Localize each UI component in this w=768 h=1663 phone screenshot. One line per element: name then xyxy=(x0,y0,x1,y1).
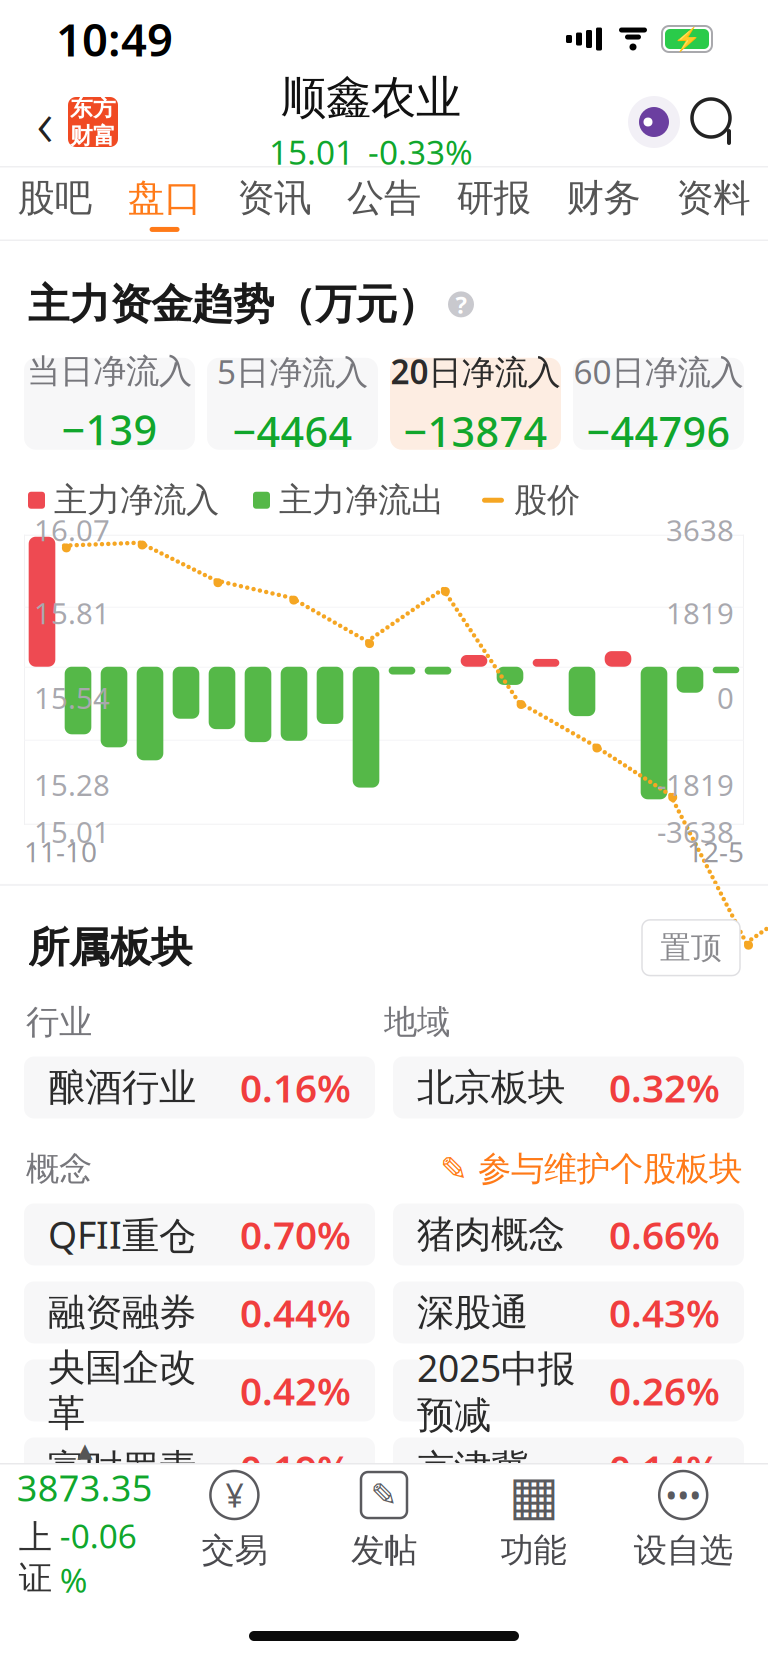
staticText: 设自选 xyxy=(634,1530,733,1571)
staticText: 京津冀 xyxy=(417,1445,528,1491)
button[interactable]: 富时罗素 xyxy=(24,1437,375,1499)
staticText: 11-10 xyxy=(24,833,97,870)
staticText: 主力净流入 xyxy=(54,480,219,521)
staticText: 20日净流入 xyxy=(390,349,560,393)
staticText: 深股通 xyxy=(417,1289,528,1335)
staticText: 财务 xyxy=(566,175,640,221)
button[interactable]: 置顶 xyxy=(642,920,740,976)
staticText: 10:49 xyxy=(56,9,173,69)
staticText: ¥ xyxy=(225,1474,243,1516)
staticText: −139 xyxy=(61,402,157,457)
staticText: 主力净流出 xyxy=(279,480,444,521)
staticText: 融资融券 xyxy=(48,1289,196,1335)
button[interactable]: 资讯 xyxy=(219,167,329,239)
staticText: 1819 xyxy=(666,593,734,632)
button[interactable]: ▲ xyxy=(10,1439,160,1602)
button[interactable]: 2025中报预减 xyxy=(393,1359,744,1421)
staticText: 猪肉概念 xyxy=(417,1211,565,1257)
staticText: 资料 xyxy=(676,175,750,221)
staticText: 60日净流入 xyxy=(573,349,743,393)
staticText: 0.42% xyxy=(240,1365,351,1416)
staticText: ⚡ xyxy=(673,26,701,52)
staticText: 北京板块 xyxy=(417,1065,565,1110)
button[interactable]: 猪肉概念 xyxy=(393,1203,744,1265)
button[interactable]: ✎ xyxy=(440,1148,742,1189)
staticText: ▲ xyxy=(77,1439,92,1462)
staticText: 顺鑫农业 xyxy=(281,70,461,126)
staticText: ✎ xyxy=(440,1150,468,1188)
staticText: 0.32% xyxy=(609,1062,720,1113)
staticText: ••• xyxy=(665,1474,701,1516)
staticText: 交易 xyxy=(201,1530,267,1571)
staticText: 概念 xyxy=(26,1148,92,1189)
staticText: 12-5 xyxy=(687,833,744,870)
button[interactable]: 智能助手 xyxy=(624,87,684,157)
button[interactable]: 搜索 xyxy=(684,87,746,157)
staticText: 股吧 xyxy=(18,175,92,221)
button[interactable]: 公告 xyxy=(329,167,439,239)
staticText: 盘口 xyxy=(128,175,202,221)
staticText: 0 xyxy=(717,678,734,717)
staticText: 地域 xyxy=(384,1002,450,1042)
staticText: 0.26% xyxy=(609,1365,720,1416)
staticText: ✎ xyxy=(370,1477,397,1513)
button[interactable]: 说明 xyxy=(448,288,474,320)
button[interactable]: 深股通 xyxy=(393,1281,744,1343)
staticText: −44796 xyxy=(586,403,730,458)
staticText: 15.01 xyxy=(34,812,110,851)
staticText: 所属板块 xyxy=(28,922,192,973)
button[interactable]: 研报 xyxy=(439,167,549,239)
button[interactable]: 酿酒行业 xyxy=(24,1056,375,1118)
button[interactable]: ✎ xyxy=(309,1470,459,1571)
staticText: 资讯 xyxy=(237,175,311,221)
staticText: 行业 xyxy=(26,1002,92,1042)
button[interactable]: 融资融券 xyxy=(24,1281,375,1343)
staticText: −13874 xyxy=(403,403,547,458)
button[interactable]: 京津冀 xyxy=(393,1437,744,1499)
staticText: QFII重仓 xyxy=(48,1210,196,1259)
button[interactable]: 当日净流入 xyxy=(24,358,195,450)
staticText: -1819 xyxy=(657,765,734,804)
staticText: 发帖 xyxy=(351,1530,417,1571)
staticText: 0.44% xyxy=(240,1287,351,1338)
staticText: -3638 xyxy=(657,812,734,851)
staticText: 0.66% xyxy=(609,1209,720,1260)
button[interactable]: 20日净流入 xyxy=(390,358,561,450)
staticText: 3873.35 xyxy=(17,1464,153,1511)
staticText: ? xyxy=(455,288,466,320)
staticText: 15.28 xyxy=(34,765,110,804)
staticText: ‹ xyxy=(36,79,53,164)
staticText: 公告 xyxy=(347,175,421,221)
staticText: 酿酒行业 xyxy=(48,1065,196,1110)
staticText: 15.54 xyxy=(34,678,110,717)
button[interactable]: 东方财富 xyxy=(68,97,118,147)
staticText: 央国企改革 xyxy=(48,1345,196,1436)
staticText: 功能 xyxy=(501,1530,567,1571)
button[interactable]: 股吧 xyxy=(0,167,110,239)
button[interactable]: 财务 xyxy=(549,167,658,239)
staticText: 东方 xyxy=(70,94,116,122)
staticText: ▦ xyxy=(509,1465,559,1525)
staticText: 研报 xyxy=(457,175,531,221)
staticText: 置顶 xyxy=(660,929,722,967)
staticText: 当日净流入 xyxy=(27,351,192,392)
button[interactable]: ▦ xyxy=(459,1470,608,1571)
staticText: −4464 xyxy=(232,403,352,458)
button[interactable]: 盘口 xyxy=(110,167,219,239)
button[interactable]: ••• xyxy=(608,1470,758,1571)
button[interactable]: QFII重仓 xyxy=(24,1203,375,1265)
staticText: -0.06% xyxy=(60,1513,137,1602)
staticText: 0.14% xyxy=(609,1443,720,1494)
staticText: 0.19% xyxy=(240,1443,351,1494)
button[interactable]: 资料 xyxy=(658,167,768,239)
button[interactable]: 北京板块 xyxy=(393,1056,744,1118)
button[interactable]: 60日净流入 xyxy=(573,358,744,450)
button[interactable]: 5日净流入 xyxy=(207,358,378,450)
button[interactable]: ¥ xyxy=(160,1470,309,1571)
button[interactable]: 返回 xyxy=(22,87,68,157)
staticText: 主力资金趋势（万元） xyxy=(28,279,438,330)
button[interactable]: 央国企改革 xyxy=(24,1359,375,1421)
staticText: 0.16% xyxy=(240,1062,351,1113)
staticText: 16.07 xyxy=(34,510,110,549)
staticText: 2025中报预减 xyxy=(417,1343,575,1438)
